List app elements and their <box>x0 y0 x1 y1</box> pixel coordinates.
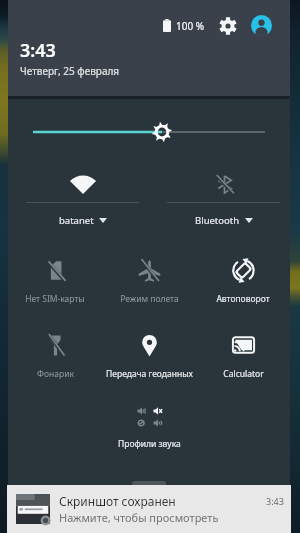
button[interactable]: Settings <box>219 17 237 35</box>
button[interactable]: Профили звука <box>8 405 290 450</box>
staticText: Calculator <box>223 368 264 380</box>
staticText: 100 % <box>176 19 205 33</box>
staticText: Нажмите, чтобы просмотреть <box>59 510 219 525</box>
button[interactable]: batanet <box>12 175 153 227</box>
button[interactable]: Brightness <box>8 110 290 154</box>
button[interactable]: Calculator <box>196 334 290 380</box>
staticText: Автоповорот <box>216 293 270 305</box>
staticText: Передача геоданных <box>106 368 193 380</box>
staticText: Нет SIM-карты <box>25 293 85 305</box>
button[interactable]: User account <box>251 15 272 36</box>
button[interactable]: Скриншот сохранен <box>7 485 291 533</box>
staticText: batanet <box>59 214 94 227</box>
staticText: Скриншот сохранен <box>59 493 266 509</box>
button[interactable]: Фонарик <box>8 334 102 380</box>
staticText: 3:43 <box>266 495 284 507</box>
staticText: Фонарик <box>37 368 74 380</box>
staticText: 3:43 <box>20 38 56 63</box>
button[interactable]: Передача геоданных <box>102 334 196 380</box>
button[interactable]: Bluetooth <box>153 175 294 227</box>
staticText: Режим полета <box>120 293 179 305</box>
button[interactable]: Нет SIM-карты <box>8 259 102 305</box>
staticText: Профили звука <box>118 438 181 450</box>
staticText: Bluetooth <box>195 214 240 227</box>
staticText: Четверг, 25 февраля <box>20 64 120 78</box>
button[interactable]: Автоповорот <box>196 259 290 305</box>
button[interactable]: Режим полета <box>102 259 196 305</box>
